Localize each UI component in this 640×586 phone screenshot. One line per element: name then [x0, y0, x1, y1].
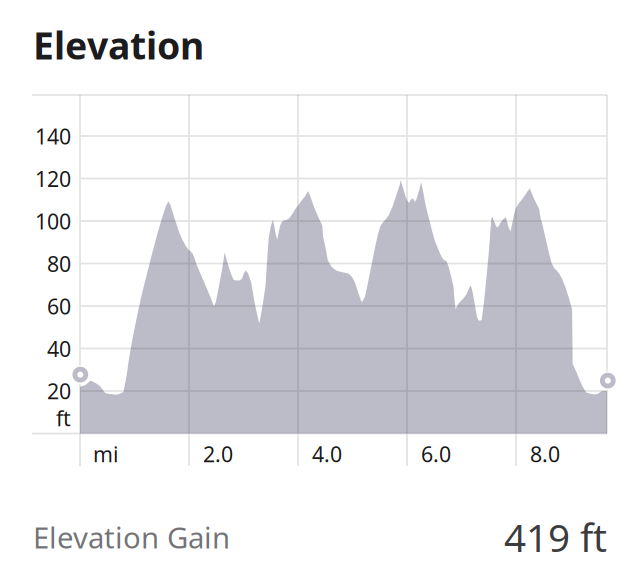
staticText: 2.0 — [203, 440, 233, 468]
staticText: 40 — [47, 334, 71, 363]
staticText: Elevation Gain — [33, 517, 230, 556]
staticText: ft — [56, 404, 71, 432]
staticText: 120 — [35, 164, 71, 193]
staticText: 20 — [47, 377, 71, 405]
staticText: 4.0 — [312, 440, 342, 468]
staticText: Elevation — [33, 20, 204, 70]
staticText: 100 — [35, 207, 71, 235]
staticText: 8.0 — [530, 440, 560, 468]
staticText: 80 — [47, 249, 71, 278]
staticText: 419 ft — [504, 511, 607, 563]
staticText: mi — [93, 440, 119, 468]
staticText: 60 — [47, 292, 71, 320]
staticText: 140 — [35, 122, 71, 150]
staticText: 6.0 — [421, 440, 451, 468]
